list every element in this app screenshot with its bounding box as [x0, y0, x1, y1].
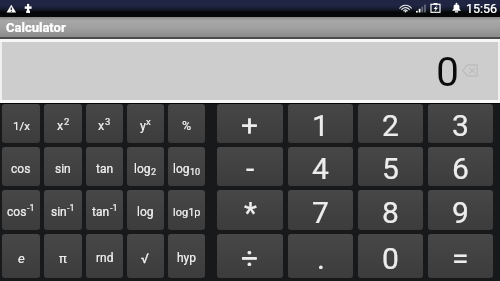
button[interactable]: % — [168, 104, 205, 143]
button[interactable]: Calculator — [0, 17, 500, 37]
button[interactable]: √ — [127, 234, 164, 278]
button[interactable]: 3 — [428, 104, 493, 143]
button[interactable]: 1/x — [2, 104, 40, 143]
button[interactable]: 1 — [288, 104, 353, 143]
button[interactable]: y — [127, 104, 164, 143]
staticText: 2 — [382, 108, 399, 143]
button[interactable]: log — [127, 190, 164, 230]
staticText: x — [146, 116, 151, 127]
staticText: hyp — [177, 251, 197, 265]
button[interactable]: hyp — [168, 234, 205, 278]
button[interactable]: tan — [86, 147, 123, 186]
button[interactable]: 6 — [428, 147, 493, 186]
button[interactable]: cos — [2, 147, 40, 186]
staticText: 15:56 — [466, 1, 498, 16]
button[interactable]: log — [168, 147, 205, 186]
staticText: 9 — [452, 195, 469, 230]
button[interactable]: 0 — [358, 234, 423, 278]
staticText: 1/x — [13, 119, 30, 132]
staticText: 3 — [105, 116, 111, 127]
staticText: 1 — [312, 108, 329, 143]
staticText: = — [452, 241, 469, 276]
staticText: sin — [55, 162, 71, 176]
staticText: log — [134, 162, 151, 176]
staticText: tan — [96, 162, 114, 176]
staticText: 0 — [436, 48, 460, 96]
staticText: ÷ — [241, 241, 259, 276]
staticText: 0 — [382, 241, 399, 276]
staticText: % — [182, 118, 192, 133]
staticText: √ — [141, 250, 150, 266]
staticText: log — [137, 205, 154, 219]
staticText: Calculator — [6, 20, 66, 35]
staticText: 3 — [452, 108, 469, 143]
button[interactable]: sin — [44, 147, 82, 186]
staticText: 5 — [382, 151, 399, 186]
staticText: 4 — [312, 151, 329, 186]
button[interactable]: 9 — [428, 190, 493, 230]
button[interactable]: x — [86, 104, 123, 143]
staticText: cos — [7, 205, 27, 219]
button[interactable]: 8 — [358, 190, 423, 230]
staticText: tan — [92, 205, 110, 219]
staticText: + — [241, 108, 259, 143]
staticText: -1 — [110, 203, 118, 214]
button[interactable]: 0 — [2, 42, 498, 100]
staticText: y — [140, 118, 146, 133]
other: Notifications — [4, 4, 44, 21]
button[interactable]: log1p — [168, 190, 205, 230]
staticText: 10 — [190, 167, 201, 178]
button[interactable]: 5 — [358, 147, 423, 186]
staticText: . — [317, 241, 325, 276]
staticText: * — [244, 195, 257, 230]
button[interactable]: e — [2, 234, 40, 278]
staticText: rnd — [96, 251, 114, 265]
staticText: log — [173, 162, 190, 176]
button[interactable]: π — [44, 234, 82, 278]
button[interactable]: + — [217, 104, 283, 143]
button[interactable]: * — [217, 190, 283, 230]
staticText: e — [18, 251, 25, 266]
button[interactable]: - — [217, 147, 283, 186]
staticText: x — [98, 118, 105, 133]
staticText: 7 — [312, 195, 329, 230]
button[interactable]: = — [428, 234, 493, 278]
staticText: log1p — [173, 206, 201, 219]
staticText: 6 — [452, 151, 469, 186]
button[interactable]: x — [44, 104, 82, 143]
button[interactable]: log — [127, 147, 164, 186]
staticText: 2 — [64, 116, 70, 127]
button[interactable]: tan — [86, 190, 123, 230]
button[interactable]: . — [288, 234, 353, 278]
staticText: sin — [51, 205, 67, 219]
staticText: -1 — [27, 203, 35, 214]
button[interactable]: 2 — [358, 104, 423, 143]
button[interactable]: cos — [2, 190, 40, 230]
staticText: 2 — [151, 167, 157, 178]
staticText: cos — [11, 162, 31, 176]
button[interactable]: 4 — [288, 147, 353, 186]
staticText: - — [246, 151, 255, 186]
button[interactable]: ÷ — [217, 234, 283, 278]
button[interactable]: rnd — [86, 234, 123, 278]
staticText: x — [57, 118, 64, 133]
staticText: -1 — [67, 203, 75, 214]
staticText: 8 — [382, 195, 399, 230]
other: Delete — [462, 63, 478, 78]
staticText: π — [59, 251, 67, 266]
button[interactable]: sin — [44, 190, 82, 230]
button[interactable]: 7 — [288, 190, 353, 230]
